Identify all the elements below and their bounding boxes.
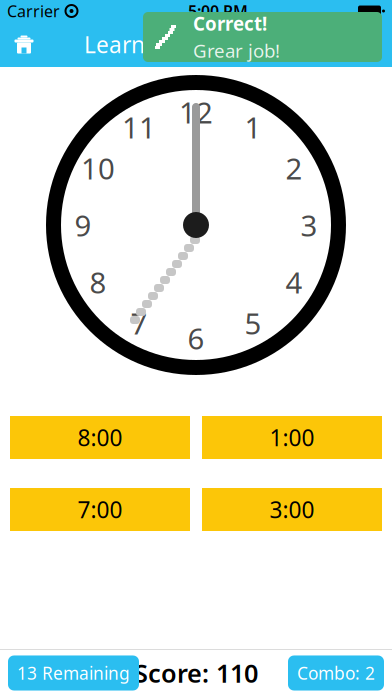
- staticText: Grear job!: [193, 38, 280, 63]
- button[interactable]: 3:00: [202, 488, 382, 531]
- staticText: 3:00: [269, 494, 314, 524]
- staticText: 13 Remaining: [17, 661, 130, 684]
- staticText: 9: [74, 205, 91, 244]
- staticText: Combo: 2: [297, 661, 375, 684]
- button[interactable]: Combo: 2: [288, 655, 384, 690]
- button[interactable]: 1:00: [202, 416, 382, 459]
- staticText: 7:00: [77, 494, 122, 524]
- staticText: 1:00: [269, 422, 314, 452]
- staticText: Learning to Tell Time: [84, 29, 308, 59]
- staticText: 1: [244, 107, 261, 146]
- button[interactable]: Home: [0, 22, 48, 67]
- button[interactable]: 8:00: [10, 416, 190, 459]
- staticText: Score: 110: [134, 656, 258, 690]
- staticText: 8:00: [77, 422, 122, 452]
- staticText: 2: [285, 148, 302, 187]
- button[interactable]: 13 Remaining: [8, 655, 139, 690]
- button[interactable]: 7:00: [10, 488, 190, 531]
- staticText: Correct!: [193, 11, 267, 36]
- staticText: 7: [130, 303, 147, 342]
- button[interactable]: Settings: [344, 22, 392, 67]
- staticText: 8: [89, 262, 106, 301]
- staticText: Carrier: [7, 0, 60, 22]
- staticText: 4: [285, 262, 302, 301]
- staticText: 12: [179, 92, 213, 131]
- staticText: 3: [300, 205, 317, 244]
- staticText: 10: [81, 148, 115, 187]
- staticText: 5: [244, 303, 261, 342]
- staticText: 11: [122, 107, 156, 146]
- staticText: 6: [187, 318, 204, 357]
- staticText: 5:00 PM: [188, 0, 248, 22]
